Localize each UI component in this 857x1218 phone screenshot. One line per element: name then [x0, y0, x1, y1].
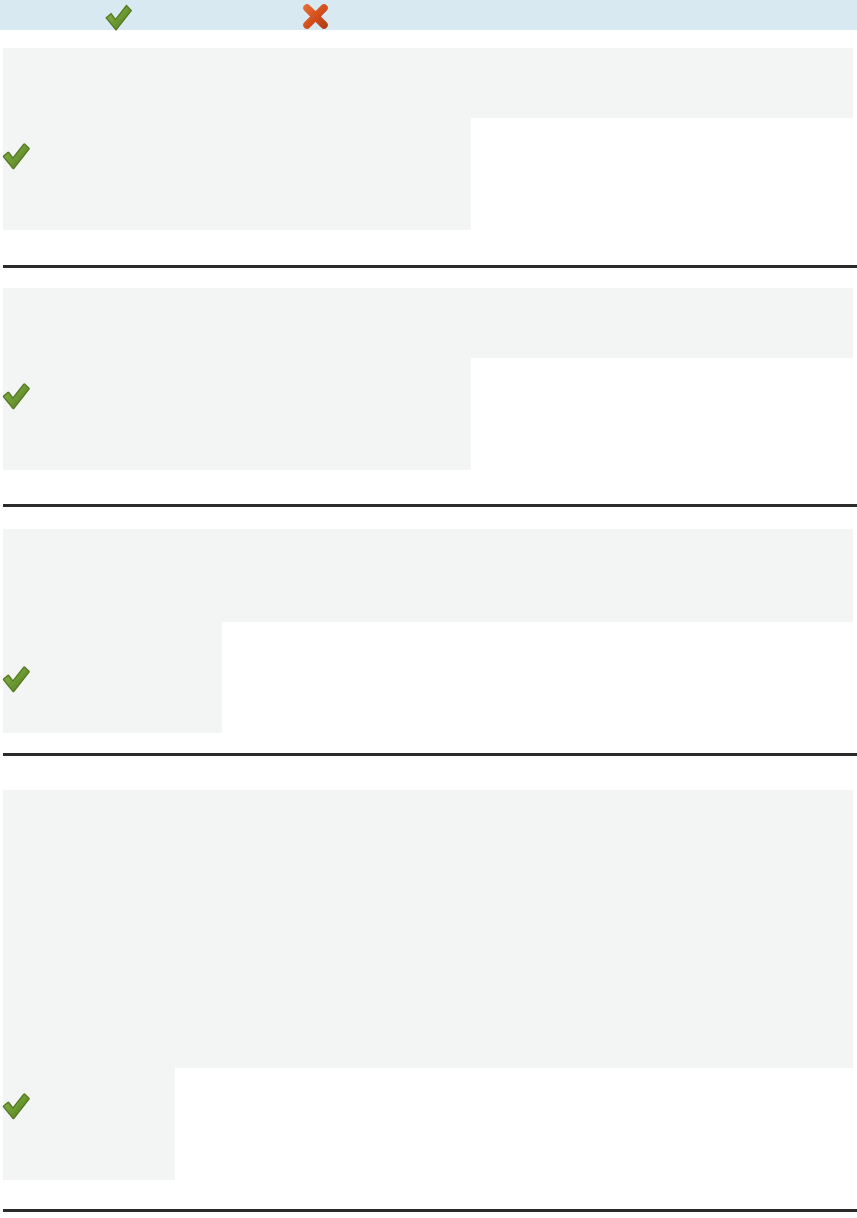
other: Passed [3, 143, 29, 169]
other: Passed [3, 1093, 29, 1119]
button[interactable]: Passed [0, 529, 857, 733]
button[interactable]: Passed [0, 288, 857, 470]
button[interactable]: Passed [104, 3, 132, 31]
button[interactable]: Passed [0, 790, 857, 1180]
button[interactable]: Failed [301, 2, 330, 31]
other: Passed [3, 666, 29, 692]
button[interactable]: Passed [0, 48, 857, 230]
other: Passed [3, 383, 29, 409]
